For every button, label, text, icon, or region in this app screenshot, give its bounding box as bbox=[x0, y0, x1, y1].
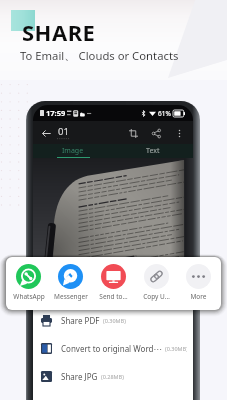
button[interactable]: Text bbox=[113, 144, 193, 157]
staticText: (0.28MB) bbox=[101, 373, 124, 380]
button[interactable]: Messenger bbox=[50, 264, 91, 301]
staticText: More bbox=[190, 292, 207, 301]
staticText: Messenger bbox=[54, 292, 88, 301]
staticText: Share PDF bbox=[61, 315, 100, 326]
staticText: (0.30MB) bbox=[103, 317, 126, 324]
button[interactable]: Share bbox=[149, 126, 163, 140]
staticText: Share JPG bbox=[61, 371, 98, 382]
button[interactable]: WhatsApp bbox=[8, 264, 49, 301]
staticText: Convert to original Word⋯ bbox=[61, 343, 162, 354]
staticText: Text bbox=[146, 146, 160, 156]
staticText: WhatsApp bbox=[13, 292, 45, 301]
button[interactable]: Send to… bbox=[93, 264, 134, 301]
button[interactable]: More bbox=[178, 264, 219, 301]
staticText: To Email、 Clouds or Contacts bbox=[20, 48, 179, 63]
button[interactable]: More options bbox=[172, 126, 186, 140]
staticText: Copy U… bbox=[143, 292, 170, 301]
button[interactable]: Convert to original Word⋯ bbox=[33, 334, 193, 362]
staticText: 17:59 bbox=[46, 108, 66, 118]
button[interactable]: Crop bbox=[126, 126, 140, 140]
button[interactable]: Image bbox=[33, 144, 113, 157]
staticText: 61% bbox=[158, 109, 171, 118]
staticText: 01 bbox=[58, 125, 69, 138]
button[interactable]: Copy U… bbox=[136, 264, 177, 301]
button[interactable]: Share PDF bbox=[33, 306, 193, 334]
staticText: SHARE bbox=[22, 17, 96, 47]
button[interactable]: Share JPG bbox=[33, 362, 193, 390]
button[interactable]: Back bbox=[39, 126, 53, 140]
staticText: (0.30MB) bbox=[165, 345, 187, 352]
staticText: Send to… bbox=[99, 292, 128, 301]
staticText: Image bbox=[62, 146, 84, 156]
